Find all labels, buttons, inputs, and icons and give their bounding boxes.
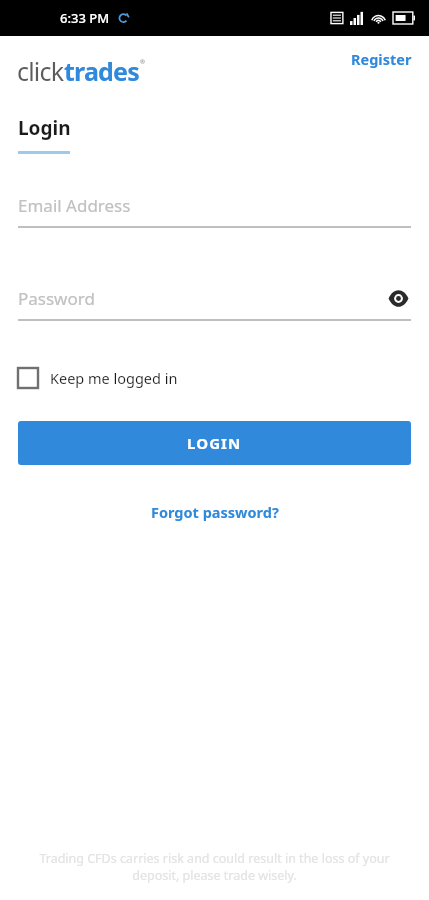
staticText: ® xyxy=(140,58,145,66)
staticText: trades xyxy=(64,54,139,88)
button[interactable]: Show password xyxy=(385,285,411,311)
staticText: Password xyxy=(18,287,95,310)
button[interactable]: LOGIN xyxy=(18,421,411,465)
button[interactable]: Login xyxy=(18,115,71,141)
staticText: LOGIN xyxy=(187,433,242,453)
staticText: Email Address xyxy=(18,194,131,217)
staticText: Forgot password? xyxy=(151,502,279,522)
staticText: Login xyxy=(18,115,71,141)
button[interactable]: Forgot password? xyxy=(139,497,291,527)
staticText: click xyxy=(17,54,64,88)
button[interactable]: Keep me logged in xyxy=(18,363,188,393)
staticText: 6:33 PM xyxy=(60,9,110,27)
staticText: Trading CFDs carries risk and could resu… xyxy=(20,850,409,884)
button[interactable]: Register xyxy=(335,47,429,77)
staticText: Keep me logged in xyxy=(50,368,178,388)
staticText: Register xyxy=(351,49,412,69)
